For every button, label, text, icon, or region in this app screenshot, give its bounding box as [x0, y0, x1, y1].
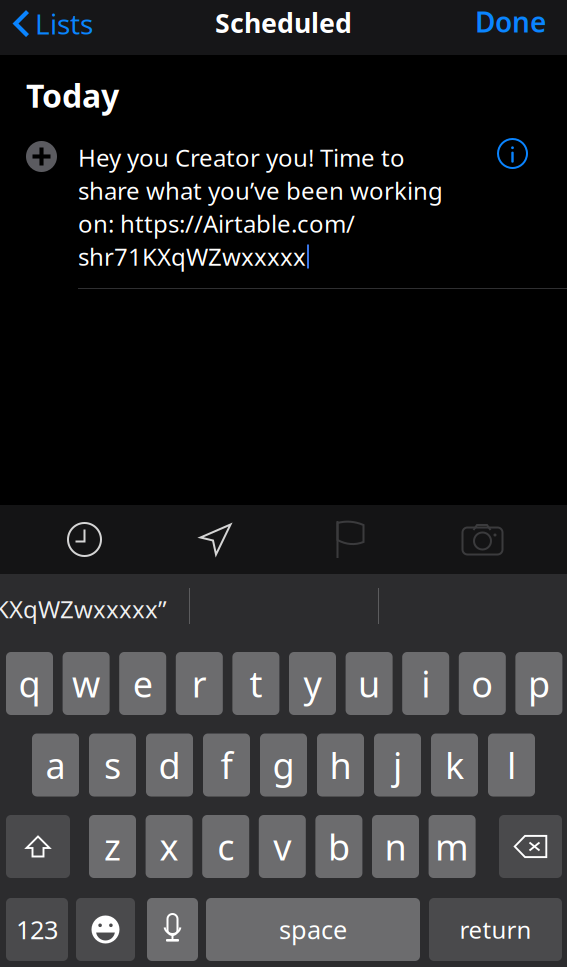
button[interactable]: Lists — [4, 0, 101, 48]
button[interactable]: Add reminder — [22, 137, 61, 176]
staticText: c — [217, 823, 234, 870]
button[interactable]: space — [206, 898, 420, 961]
staticText: m — [435, 823, 469, 870]
button[interactable]: Add image — [415, 505, 550, 574]
staticText: h — [329, 741, 351, 789]
staticText: e — [133, 660, 153, 707]
button[interactable]: Remind me at a location — [148, 505, 283, 574]
staticText: z — [104, 823, 121, 870]
button[interactable]: c — [202, 815, 249, 878]
button[interactable]: g — [260, 733, 307, 796]
button[interactable]: x — [146, 815, 193, 878]
button[interactable]: 123 — [6, 898, 68, 961]
button[interactable]: return — [429, 898, 562, 961]
staticText: return — [459, 914, 531, 945]
button[interactable]: l — [488, 733, 535, 796]
button[interactable]: u — [346, 652, 393, 715]
button[interactable]: Remind me at a time — [17, 505, 152, 574]
staticText: k — [445, 741, 464, 789]
button[interactable]: Suggestion — [0, 574, 189, 652]
button[interactable]: z — [89, 815, 136, 878]
button[interactable]: k — [431, 733, 478, 796]
staticText: Done — [475, 3, 546, 40]
staticText: r — [192, 660, 207, 707]
button[interactable]: d — [146, 733, 193, 796]
staticText: g — [272, 741, 294, 789]
button[interactable]: n — [372, 815, 419, 878]
button[interactable]: Delete — [499, 815, 562, 878]
staticText: p — [528, 660, 550, 707]
button[interactable]: e — [119, 652, 166, 715]
staticText: o — [471, 660, 493, 707]
button[interactable]: p — [515, 652, 562, 715]
button[interactable]: Dictate — [147, 898, 198, 961]
staticText: n — [384, 823, 406, 870]
button[interactable]: m — [429, 815, 476, 878]
staticText: Hey you Creator you! Time to — [78, 142, 405, 173]
staticText: b — [328, 823, 350, 870]
button[interactable]: a — [32, 733, 79, 796]
staticText: i — [421, 660, 430, 707]
staticText: a — [45, 741, 65, 789]
staticText: space — [279, 913, 347, 946]
staticText: s — [104, 741, 121, 789]
button[interactable]: t — [232, 652, 279, 715]
button[interactable]: w — [63, 652, 110, 715]
staticText: t — [249, 660, 262, 707]
button[interactable]: q — [6, 652, 53, 715]
staticText: shr71KXqWZwxxxxx — [78, 241, 306, 272]
button[interactable]: Done — [465, 0, 556, 46]
button[interactable]: v — [259, 815, 306, 878]
staticText: share what you’ve been working — [78, 175, 443, 206]
staticText: v — [273, 823, 291, 870]
button[interactable]: h — [317, 733, 364, 796]
staticText: Scheduled — [215, 5, 352, 40]
staticText: d — [158, 741, 180, 789]
staticText: Lists — [35, 5, 93, 42]
button[interactable]: r — [176, 652, 223, 715]
staticText: on: https://Airtable.com/ — [78, 208, 355, 239]
staticText: j — [393, 741, 402, 789]
button[interactable]: b — [315, 815, 362, 878]
staticText: w — [72, 660, 100, 707]
staticText: u — [358, 660, 380, 707]
staticText: l — [507, 741, 516, 789]
staticText: Today — [26, 74, 119, 116]
staticText: f — [220, 741, 232, 789]
staticText: y — [303, 660, 321, 707]
button[interactable]: j — [374, 733, 421, 796]
button[interactable]: Details — [493, 134, 532, 173]
staticText: q — [18, 660, 40, 707]
button[interactable]: Emoji — [76, 898, 135, 961]
button[interactable]: o — [459, 652, 506, 715]
button[interactable]: Shift — [6, 815, 70, 878]
button[interactable]: i — [402, 652, 449, 715]
button[interactable]: y — [289, 652, 336, 715]
button[interactable]: s — [89, 733, 136, 796]
button[interactable]: f — [203, 733, 250, 796]
staticText: x — [160, 823, 179, 870]
staticText: 123 — [16, 913, 58, 946]
staticText: KXqWZwxxxxx” — [0, 593, 167, 625]
button[interactable]: Flag — [283, 505, 418, 574]
